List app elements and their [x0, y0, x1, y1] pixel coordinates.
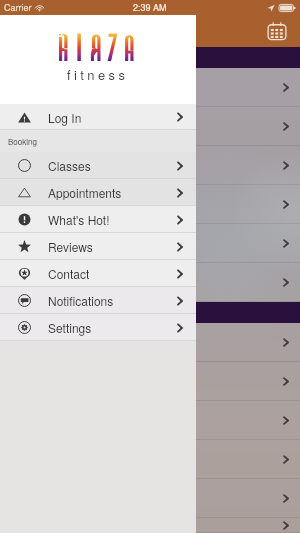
button[interactable]: Reviews	[0, 233, 196, 260]
staticText: Log In	[48, 109, 82, 126]
button[interactable]	[0, 323, 300, 362]
staticText: What's Hot!	[48, 211, 110, 228]
button[interactable]	[0, 518, 300, 533]
staticText: Reviews	[48, 238, 93, 255]
staticText: Classes	[48, 157, 91, 174]
button[interactable]	[0, 440, 300, 479]
button[interactable]: Log In	[0, 104, 196, 130]
button[interactable]: Calendar	[265, 19, 289, 43]
button[interactable]	[0, 263, 300, 302]
button[interactable]: Notifications	[0, 287, 196, 314]
staticText: Appointments	[48, 184, 122, 201]
staticText: Settings	[48, 319, 92, 336]
button[interactable]	[0, 401, 300, 440]
staticText: fitness	[67, 65, 129, 84]
button[interactable]: Contact	[0, 260, 196, 287]
button[interactable]	[0, 68, 300, 107]
button[interactable]: What's Hot!	[0, 206, 196, 233]
button[interactable]	[0, 224, 300, 263]
button[interactable]	[0, 107, 300, 146]
staticText: Booking	[8, 136, 37, 147]
button[interactable]	[0, 146, 300, 185]
staticText: Notifications	[48, 292, 114, 309]
staticText: Carrier	[4, 1, 32, 14]
button[interactable]	[0, 185, 300, 224]
button[interactable]	[0, 362, 300, 401]
staticText: 2:39 AM	[133, 1, 167, 14]
button[interactable]	[0, 479, 300, 518]
staticText: Contact	[48, 265, 90, 282]
button[interactable]: Appointments	[0, 179, 196, 206]
staticText: Thu 27	[6, 306, 38, 320]
button[interactable]: Classes	[0, 152, 196, 179]
button[interactable]: Settings	[0, 314, 196, 341]
